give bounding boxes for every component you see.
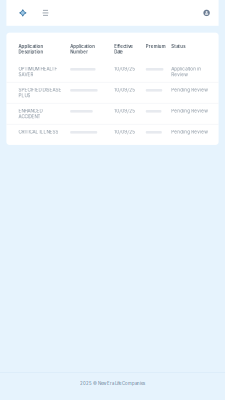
button[interactable]: Menu <box>34 0 57 26</box>
staticText: Application <box>70 44 95 49</box>
staticText: ACCIDENT <box>18 114 40 119</box>
staticText: Premium <box>146 44 166 49</box>
staticText: 10/09/25 <box>114 129 135 135</box>
staticText: PLUS <box>18 93 30 98</box>
button[interactable]: ENHANCED <box>8 103 217 124</box>
staticText: CRITICAL ILLNESS <box>18 129 58 135</box>
staticText: Status <box>171 44 185 49</box>
button[interactable]: Account <box>195 0 219 26</box>
staticText: 10/09/25 <box>114 87 135 93</box>
staticText: 10/09/25 <box>114 66 135 72</box>
button[interactable]: CRITICAL ILLNESS <box>8 124 217 145</box>
staticText: OPTIMUM HEALTH <box>18 66 57 72</box>
staticText: SAVER <box>18 72 33 77</box>
staticText: Number <box>70 49 88 55</box>
staticText: Review <box>171 72 188 77</box>
staticText: 2025 © New Era Life Companies <box>80 381 145 386</box>
staticText: Application <box>18 44 43 49</box>
button[interactable]: Home <box>6 0 34 26</box>
button[interactable]: OPTIMUM HEALTH <box>8 61 217 82</box>
staticText: Pending Review <box>171 87 208 93</box>
staticText: Pending Review <box>171 108 208 114</box>
staticText: 10/09/25 <box>114 108 135 114</box>
staticText: Description <box>18 49 43 55</box>
staticText: Pending Review <box>171 129 208 135</box>
staticText: Effective <box>114 44 133 49</box>
button[interactable]: SPECIFIED DISEASE <box>8 82 217 103</box>
staticText: Date <box>114 49 123 55</box>
staticText: Application in <box>171 66 201 72</box>
staticText: ENHANCED <box>18 108 42 114</box>
staticText: SPECIFIED DISEASE <box>18 87 61 93</box>
